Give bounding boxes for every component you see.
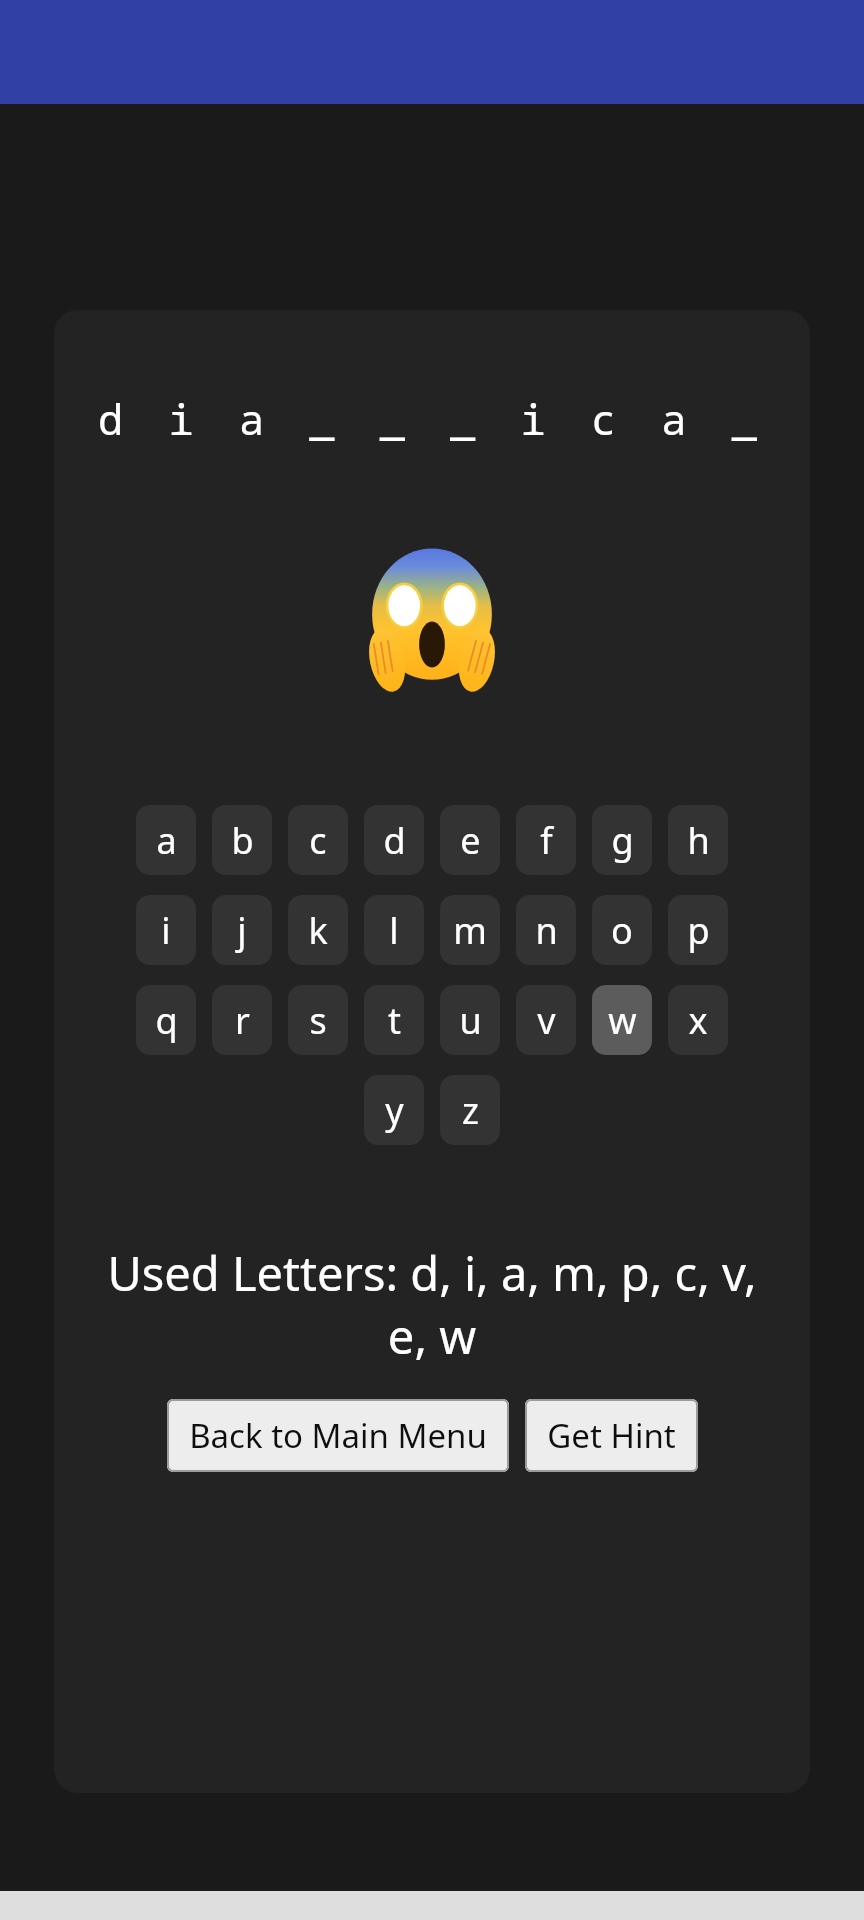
button[interactable]: c <box>288 805 348 875</box>
staticText: e <box>460 816 481 865</box>
button[interactable]: y <box>364 1075 424 1145</box>
staticText: z <box>462 1086 479 1135</box>
button[interactable]: t <box>364 985 424 1055</box>
button[interactable]: r <box>212 985 272 1055</box>
button[interactable]: p <box>668 895 728 965</box>
button[interactable]: w <box>592 985 652 1055</box>
button[interactable]: o <box>592 895 652 965</box>
button[interactable]: s <box>288 985 348 1055</box>
button[interactable]: Get Hint <box>525 1399 698 1472</box>
staticText: Get Hint <box>547 1413 676 1458</box>
staticText: m <box>453 906 487 955</box>
button[interactable]: a <box>136 805 196 875</box>
staticText: t <box>388 996 401 1045</box>
staticText: w <box>608 996 637 1045</box>
staticText: g <box>611 816 634 865</box>
staticText: j <box>237 906 247 955</box>
staticText: q <box>155 996 178 1045</box>
button[interactable]: d <box>364 805 424 875</box>
button[interactable]: n <box>516 895 576 965</box>
staticText: d i a _ _ _ i c a _ <box>98 390 767 447</box>
button[interactable]: i <box>136 895 196 965</box>
staticText: s <box>309 996 327 1045</box>
button[interactable]: k <box>288 895 348 965</box>
button[interactable]: x <box>668 985 728 1055</box>
staticText: Used Letters: d, i, a, m, p, c, v, e, w <box>88 1241 776 1367</box>
staticText: k <box>308 906 328 955</box>
staticText: p <box>687 906 710 955</box>
button[interactable]: b <box>212 805 272 875</box>
staticText: Back to Main Menu <box>189 1413 487 1458</box>
button[interactable]: v <box>516 985 576 1055</box>
staticText: i <box>161 906 171 955</box>
staticText: f <box>540 816 553 865</box>
button[interactable]: m <box>440 895 500 965</box>
staticText: h <box>687 816 710 865</box>
staticText: r <box>235 996 250 1045</box>
staticText: b <box>231 816 254 865</box>
staticText: o <box>611 906 633 955</box>
button[interactable]: g <box>592 805 652 875</box>
button[interactable]: u <box>440 985 500 1055</box>
staticText: c <box>309 816 327 865</box>
staticText: l <box>389 906 399 955</box>
button[interactable]: h <box>668 805 728 875</box>
staticText: x <box>688 996 708 1045</box>
button[interactable]: e <box>440 805 500 875</box>
button[interactable]: Back to Main Menu <box>167 1399 509 1472</box>
staticText: u <box>459 996 482 1045</box>
button[interactable]: q <box>136 985 196 1055</box>
button[interactable]: f <box>516 805 576 875</box>
staticText: d <box>383 816 406 865</box>
staticText: a <box>156 816 177 865</box>
button[interactable]: j <box>212 895 272 965</box>
staticText: v <box>537 996 556 1045</box>
other: Screaming face in fear <box>359 547 505 693</box>
button[interactable]: l <box>364 895 424 965</box>
button[interactable]: z <box>440 1075 500 1145</box>
staticText: n <box>535 906 558 955</box>
staticText: y <box>385 1086 404 1135</box>
